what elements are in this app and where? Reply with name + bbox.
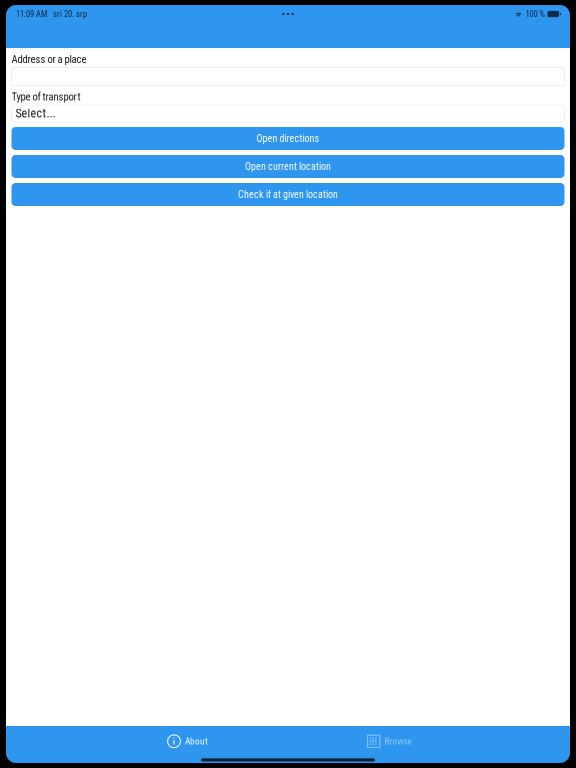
- staticText: Open current location: [245, 161, 331, 172]
- staticText: 11:09 AM: [16, 9, 47, 19]
- staticText: 100 %: [525, 9, 544, 19]
- staticText: Open directions: [256, 133, 319, 144]
- button[interactable]: Check if at given location: [11, 183, 564, 206]
- staticText: sri 20. srp: [53, 9, 87, 19]
- staticText: Select...: [15, 106, 55, 121]
- staticText: Browse: [384, 736, 411, 747]
- staticText: Check if at given location: [238, 189, 338, 200]
- button[interactable]: About: [161, 732, 214, 750]
- staticText: Address or a place: [11, 53, 86, 65]
- button[interactable]: Open current location: [11, 155, 564, 178]
- button[interactable]: [11, 67, 564, 85]
- staticText: Type of transport: [11, 90, 80, 103]
- staticText: About: [185, 736, 208, 747]
- button[interactable]: Browse: [361, 732, 417, 750]
- button[interactable]: Select...: [11, 105, 564, 122]
- button[interactable]: Open directions: [11, 127, 564, 150]
